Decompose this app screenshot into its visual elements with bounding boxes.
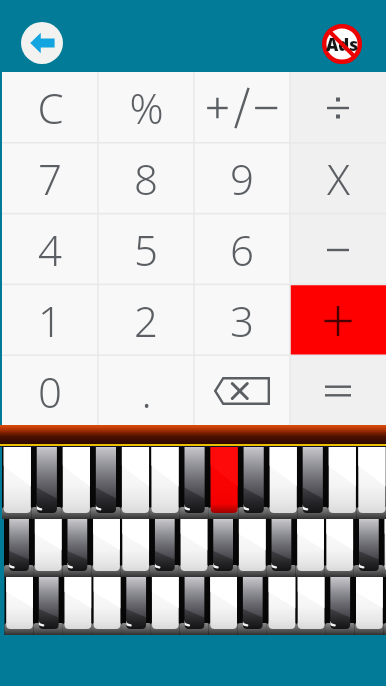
staticText: 1 [38,292,62,349]
button[interactable]: 5 [98,214,194,285]
staticText: 5 [134,221,158,278]
staticText: 2 [134,292,158,349]
button[interactable] [194,356,290,426]
staticText: % [129,79,164,136]
staticText: 8 [134,150,158,207]
button[interactable]: % [98,72,194,143]
button[interactable]: 4 [2,214,98,285]
button[interactable]: 7 [2,143,98,214]
staticText: 3 [230,292,254,349]
button[interactable] [290,214,386,285]
button[interactable]: 6 [194,214,290,285]
button[interactable]: . [98,356,194,426]
button[interactable] [290,356,386,426]
button[interactable]: 8 [98,143,194,214]
button[interactable]: Back [21,22,63,64]
button[interactable] [194,72,290,143]
staticText: 0 [38,363,62,420]
button[interactable]: 0 [2,356,98,426]
staticText: 9 [230,150,254,207]
staticText: 4 [38,221,62,278]
button[interactable]: C [2,72,98,143]
staticText: 6 [230,221,254,278]
button[interactable] [290,285,386,356]
staticText: . [141,363,152,420]
button[interactable]: Remove ads [322,24,362,64]
staticText: X [327,150,350,207]
staticText: Ads [326,33,359,56]
button[interactable]: X [290,143,386,214]
button[interactable]: 1 [2,285,98,356]
button[interactable]: 3 [194,285,290,356]
staticText: 7 [38,150,62,207]
button[interactable]: 2 [98,285,194,356]
staticText: C [37,79,64,136]
button[interactable]: 9 [194,143,290,214]
button[interactable] [290,72,386,143]
